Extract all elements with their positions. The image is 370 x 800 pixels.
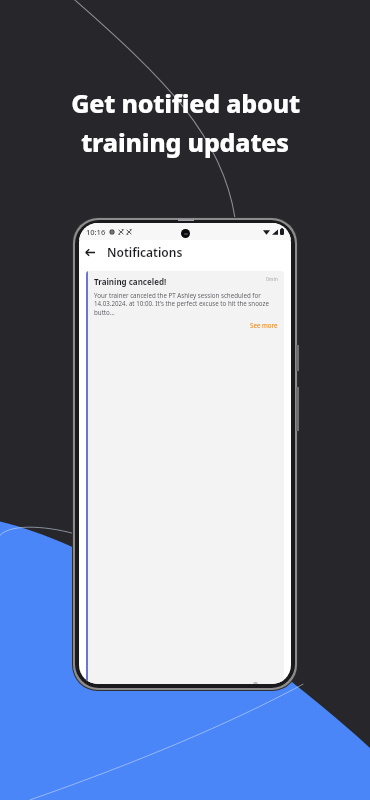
button[interactable]: Training canceled! — [86, 271, 284, 684]
staticText: See more — [250, 321, 278, 329]
staticText: Your trainer canceled the PT Ashley sess… — [94, 291, 278, 317]
button[interactable]: See more — [250, 321, 278, 329]
staticText: 10:16 — [86, 227, 106, 237]
staticText: Training canceled! — [94, 276, 266, 287]
staticText: training updates — [81, 125, 289, 159]
staticText: 0min — [266, 276, 278, 283]
button[interactable]: Back — [79, 241, 101, 263]
staticText: Notifications — [107, 244, 183, 260]
staticText: Get notified about — [71, 86, 300, 120]
